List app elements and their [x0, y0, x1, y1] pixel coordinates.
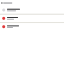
button[interactable] [0, 23, 64, 31]
button[interactable] [0, 6, 64, 14]
button[interactable] [0, 14, 64, 22]
button[interactable]: Back [0, 2, 12, 4]
